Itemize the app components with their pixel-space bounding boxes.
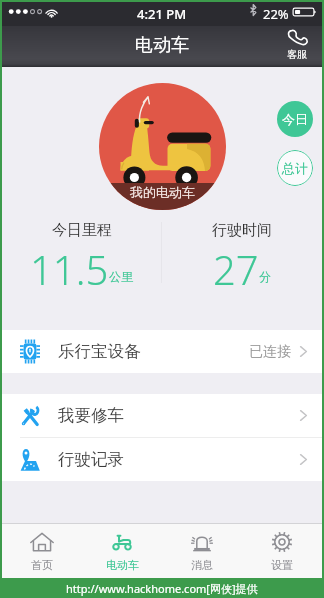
- staticText: 今日里程: [52, 221, 112, 240]
- button[interactable]: 设置: [242, 524, 322, 578]
- button[interactable]: 乐行宝设备: [2, 330, 322, 373]
- staticText: 行驶记录: [58, 449, 124, 470]
- staticText: 设置: [271, 558, 293, 572]
- button[interactable]: 电动车: [82, 524, 162, 578]
- staticText: http://www.hackhome.com[网侠]提供: [66, 581, 258, 596]
- staticText: 公里: [109, 269, 133, 284]
- button[interactable]: 今日: [277, 101, 313, 137]
- staticText: 27: [213, 242, 259, 291]
- staticText: 总计: [282, 160, 308, 176]
- button[interactable]: 总计: [277, 150, 313, 186]
- button[interactable]: 我要修车: [2, 394, 322, 437]
- staticText: 电动车: [106, 558, 139, 572]
- staticText: 乐行宝设备: [58, 341, 141, 362]
- staticText: 客服: [287, 48, 307, 61]
- staticText: 4:21 PM: [137, 5, 187, 23]
- button[interactable]: 首页: [2, 524, 82, 578]
- staticText: 11.5: [30, 242, 109, 291]
- staticText: 已连接: [249, 343, 291, 361]
- staticText: 今日: [282, 111, 308, 127]
- staticText: 分: [259, 269, 271, 284]
- staticText: 我要修车: [58, 405, 124, 426]
- staticText: 22%: [263, 5, 289, 23]
- button[interactable]: 客服 Customer service: [287, 28, 307, 61]
- staticText: 行驶时间: [212, 221, 272, 240]
- staticText: 电动车: [135, 34, 189, 57]
- staticText: 消息: [191, 558, 213, 572]
- button[interactable]: 消息: [162, 524, 242, 578]
- button[interactable]: 行驶记录: [2, 438, 322, 481]
- staticText: 我的电动车: [130, 184, 195, 200]
- staticText: 首页: [31, 558, 53, 572]
